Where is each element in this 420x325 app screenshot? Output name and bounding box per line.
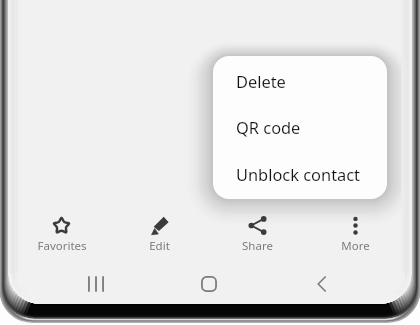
staticText: Unblock contact [236,163,361,185]
staticText: Delete [236,70,286,92]
staticText: More [341,238,370,254]
button[interactable]: Home [152,261,265,307]
button[interactable]: Back [265,261,378,307]
button[interactable]: QR code [213,104,387,150]
button[interactable]: Delete [213,58,387,104]
button[interactable]: Favorites [13,207,110,254]
staticText: Favorites [37,238,87,254]
staticText: Edit [149,238,170,254]
button[interactable]: Unblock contact [213,151,387,197]
staticText: QR code [236,116,301,138]
button[interactable]: Edit [110,207,208,254]
button[interactable]: Recent apps [40,261,152,307]
button[interactable]: More [306,207,404,254]
button[interactable]: Share [208,207,306,254]
staticText: Share [242,238,273,254]
